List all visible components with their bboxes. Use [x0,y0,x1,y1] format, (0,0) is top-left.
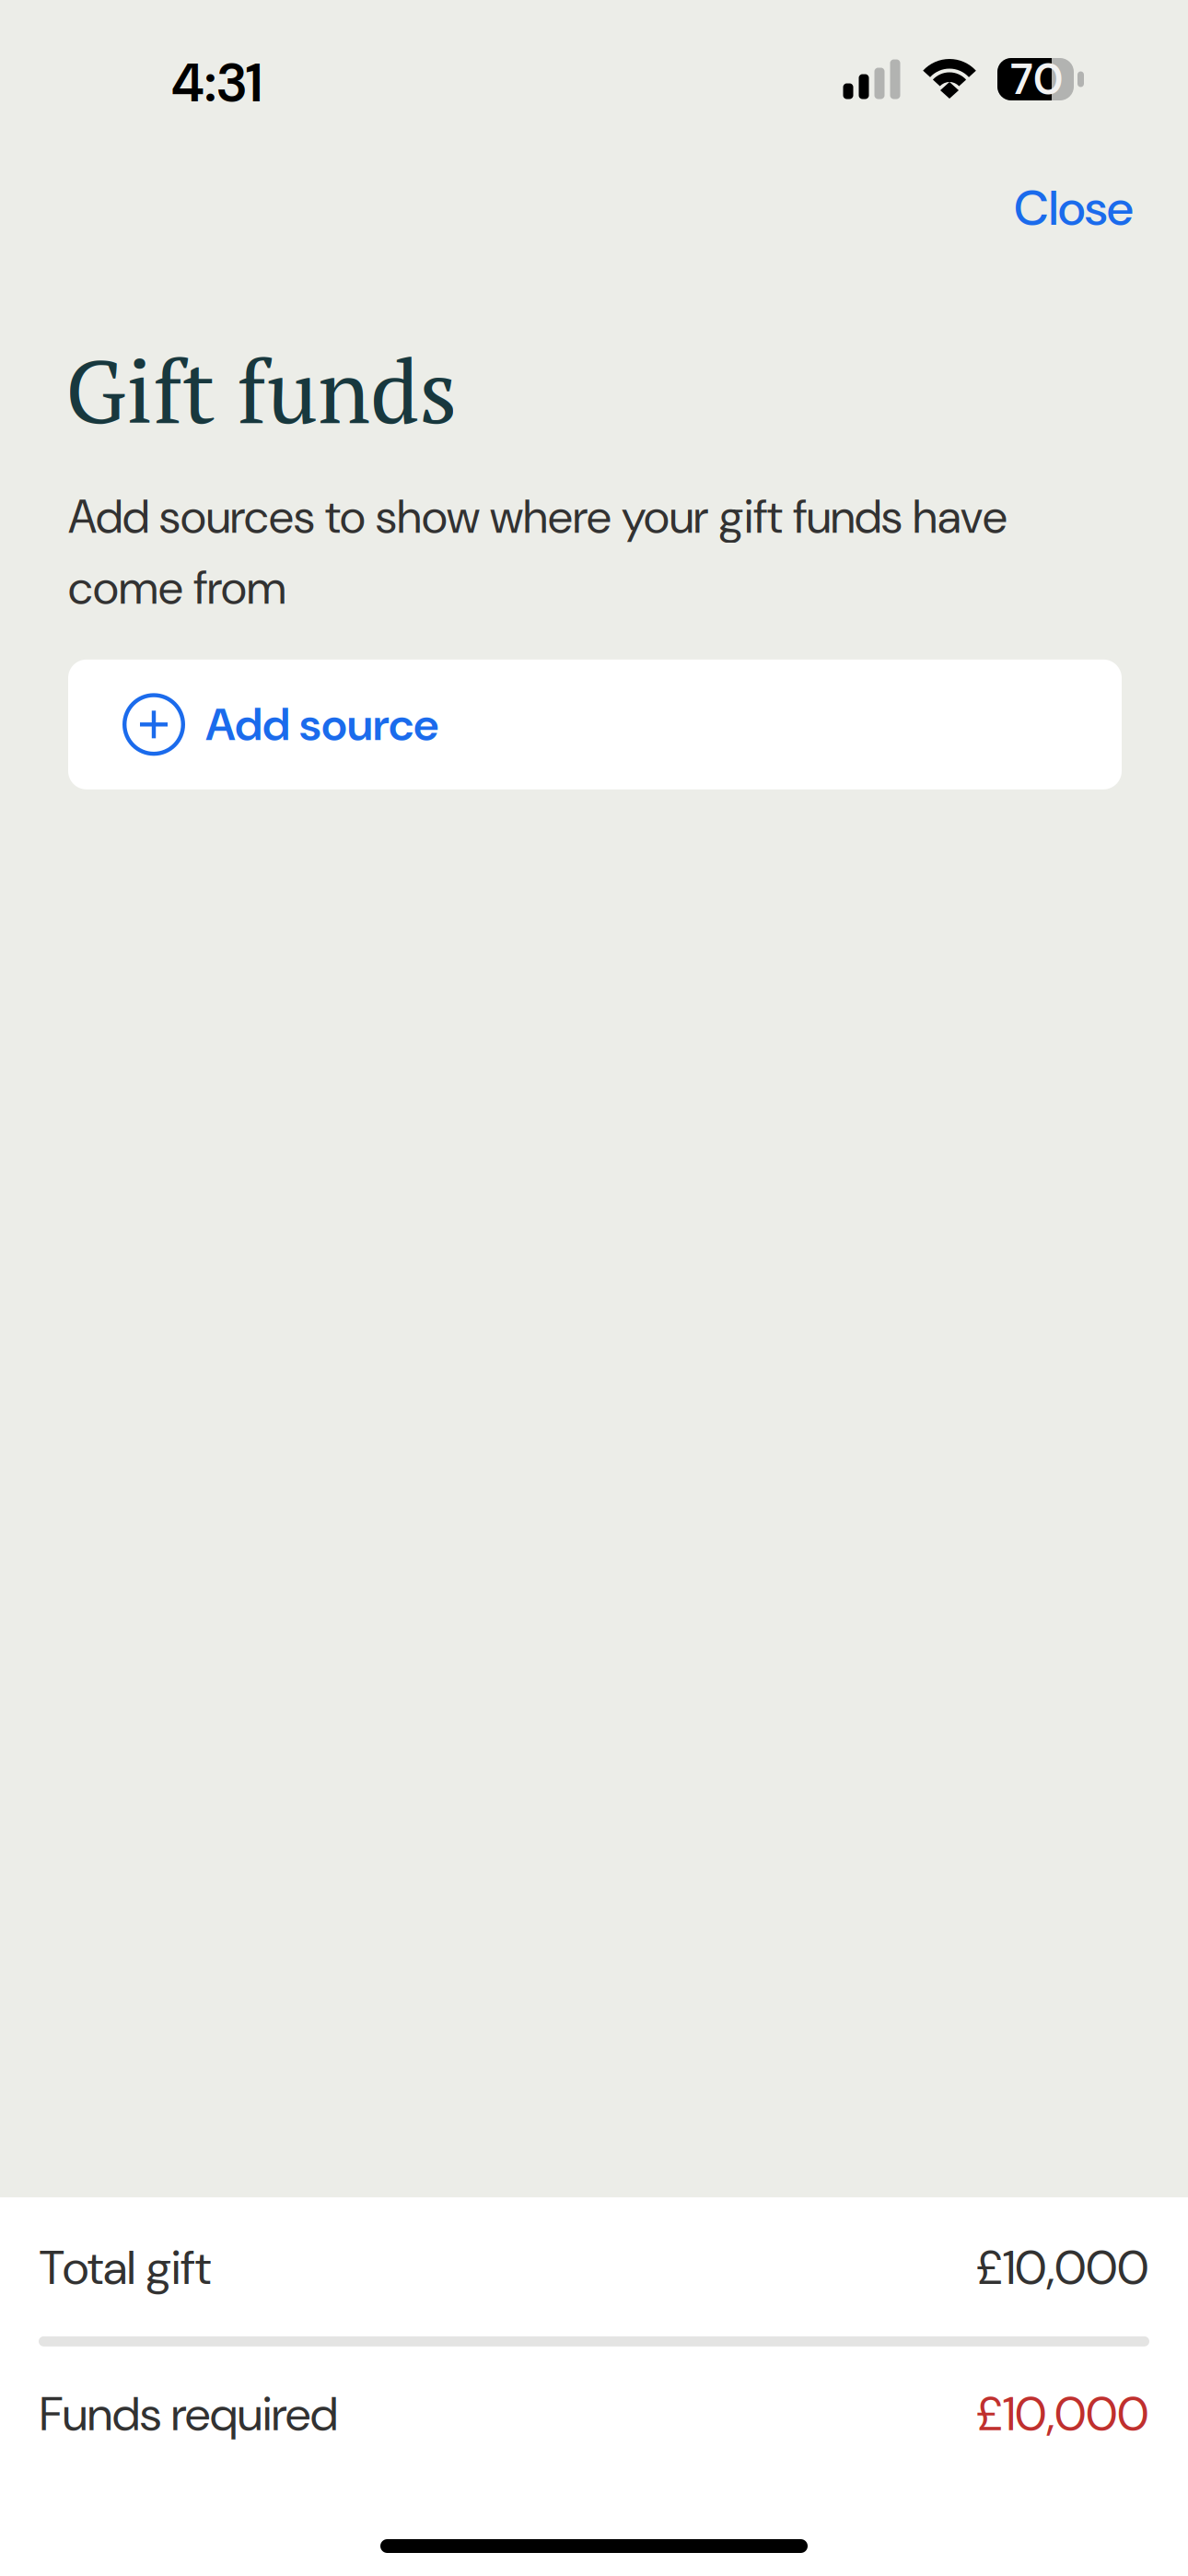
staticText: 70 [1010,51,1063,107]
staticText: Add source [205,695,438,754]
button[interactable]: Close [990,166,1157,250]
staticText: Gift funds [65,331,458,448]
staticText: £10,000 [976,2237,1148,2298]
staticText: Add sources to show where your gift fund… [68,487,1007,618]
staticText: £10,000 [976,2383,1148,2445]
staticText: Total gift [40,2237,211,2298]
staticText: Funds required [40,2383,338,2445]
staticText: 4:31 [171,48,262,118]
staticText: Close [1014,176,1133,240]
button[interactable]: Add source [68,659,1122,789]
